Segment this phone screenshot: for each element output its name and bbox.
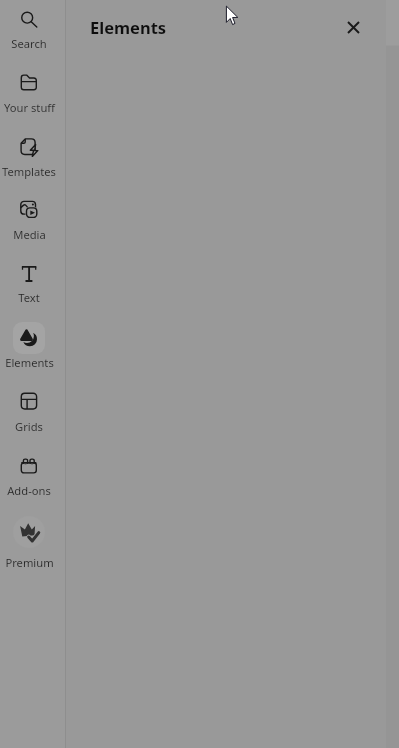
button[interactable]: Add-ons [0, 449, 65, 499]
staticText: Add-ons [7, 483, 51, 498]
button[interactable]: Media [0, 193, 65, 243]
button[interactable]: Text [0, 257, 65, 306]
staticText: Premium [5, 555, 54, 570]
button[interactable]: Grids [0, 385, 65, 435]
button[interactable]: Elements [0, 321, 65, 371]
staticText: Elements [90, 16, 167, 38]
staticText: Your stuff [4, 100, 55, 115]
button[interactable]: Search [0, 2, 65, 52]
staticText: Templates [2, 164, 56, 179]
staticText: Elements [5, 355, 54, 370]
button[interactable]: Your stuff [0, 66, 65, 116]
staticText: Search [11, 36, 47, 51]
staticText: Media [13, 227, 46, 242]
staticText: Grids [15, 419, 43, 434]
button[interactable]: Premium [0, 515, 65, 571]
staticText: Text [18, 290, 40, 305]
button[interactable]: Close [333, 7, 373, 47]
button[interactable]: Templates [0, 130, 65, 180]
